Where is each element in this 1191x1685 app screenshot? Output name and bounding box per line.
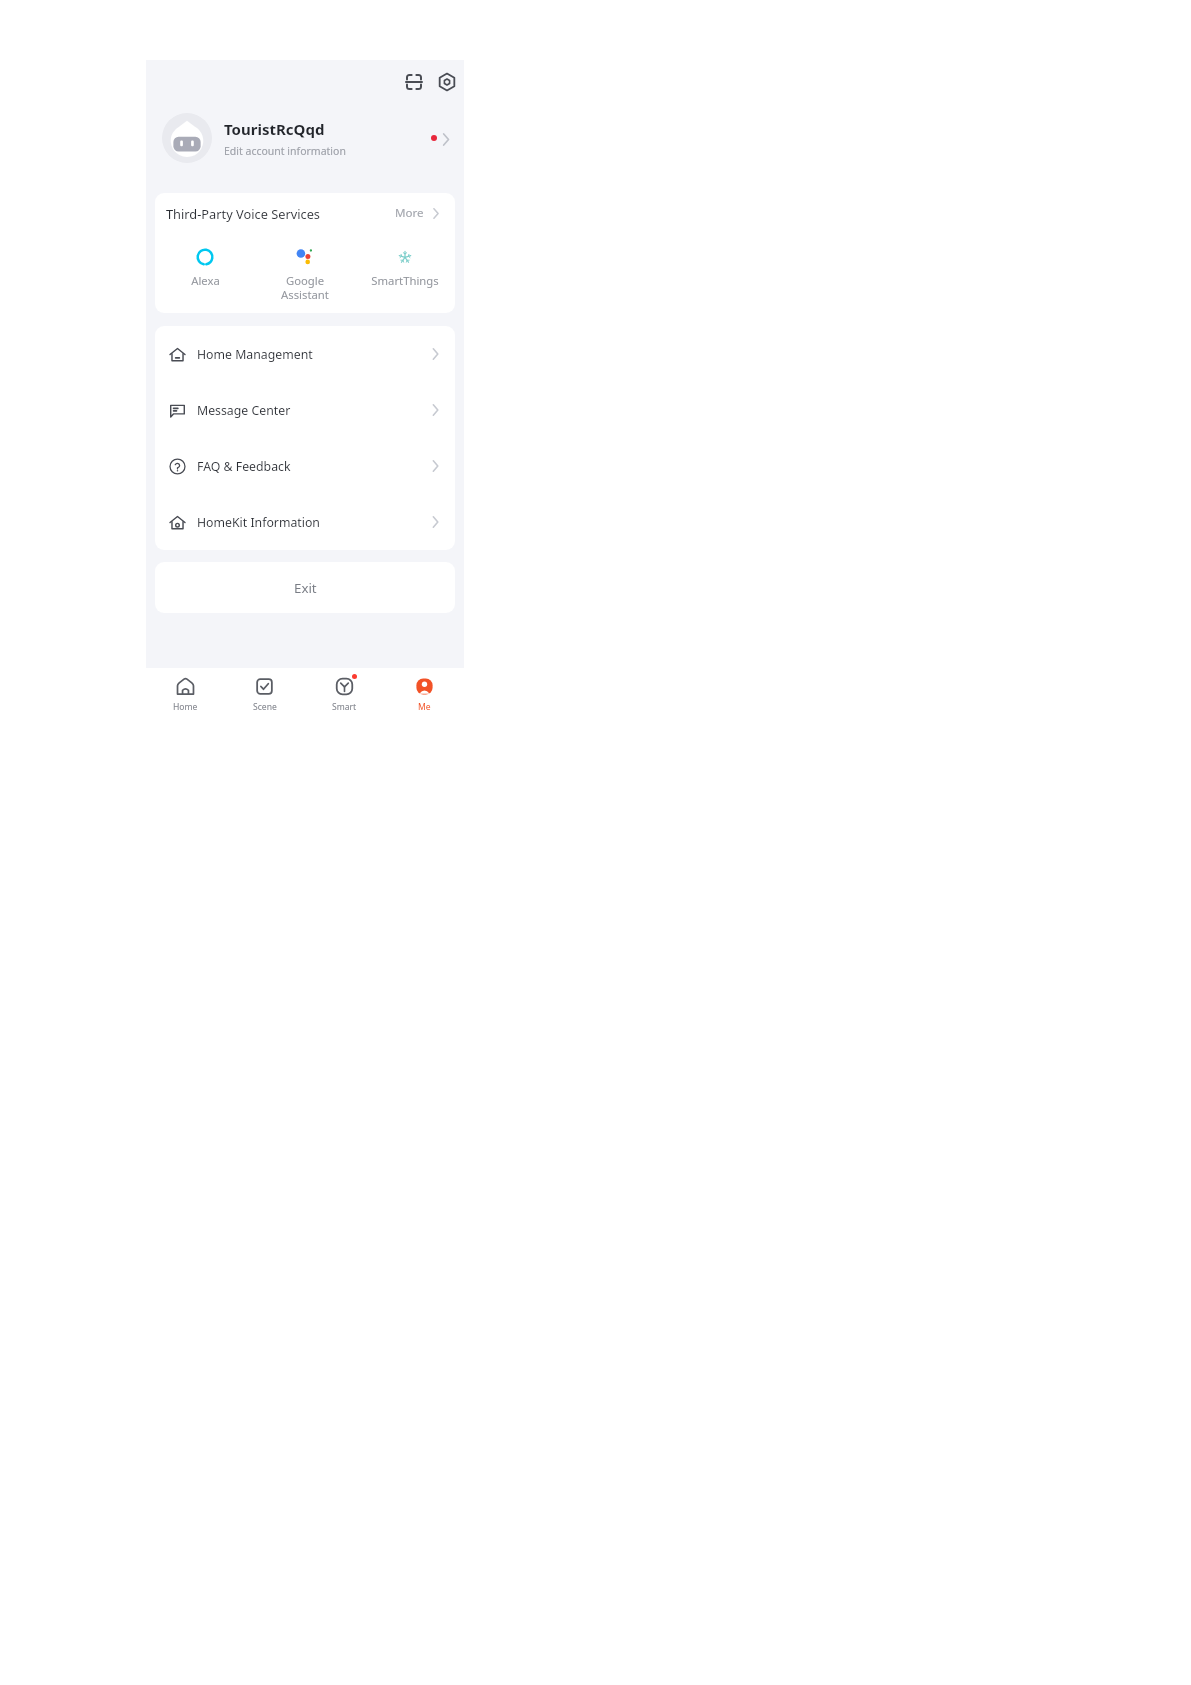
staticText: Message Center: [197, 402, 291, 419]
staticText: HomeKit Information: [197, 514, 320, 531]
staticText: More: [395, 205, 424, 221]
button[interactable]: TouristRcQqd: [146, 104, 464, 184]
button[interactable]: Scene: [225, 668, 304, 720]
button[interactable]: More: [395, 201, 442, 225]
button[interactable]: Home: [146, 668, 225, 720]
button[interactable]: FAQ & Feedback: [155, 438, 455, 494]
staticText: TouristRcQqd: [224, 119, 325, 139]
staticText: Home: [173, 701, 198, 713]
button[interactable]: Exit: [155, 562, 455, 613]
staticText: Home Management: [197, 346, 313, 363]
staticText: Third-Party Voice Services: [166, 205, 320, 222]
button[interactable]: Home Management: [155, 326, 455, 382]
button[interactable]: Smart: [304, 668, 384, 720]
staticText: Alexa: [191, 273, 220, 288]
button[interactable]: SmartThings: [355, 247, 455, 288]
staticText: Exit: [294, 579, 317, 597]
button[interactable]: Scan QR code: [399, 67, 429, 97]
staticText: Google Assistant: [281, 273, 329, 302]
button[interactable]: Google Assistant: [255, 247, 355, 302]
button[interactable]: HomeKit Information: [155, 494, 455, 550]
button[interactable]: Me: [384, 668, 464, 720]
staticText: SmartThings: [371, 273, 439, 288]
staticText: Me: [418, 701, 431, 713]
button[interactable]: Settings: [432, 67, 462, 97]
staticText: Edit account information: [224, 144, 346, 158]
button[interactable]: Alexa: [155, 247, 255, 288]
staticText: FAQ & Feedback: [197, 458, 291, 475]
button[interactable]: Message Center: [155, 382, 455, 438]
staticText: Smart: [332, 701, 357, 713]
staticText: Scene: [253, 701, 277, 713]
